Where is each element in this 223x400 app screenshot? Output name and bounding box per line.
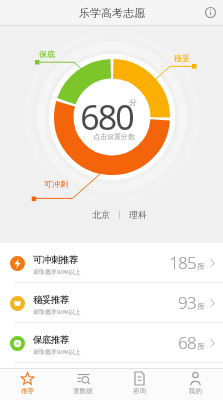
staticText: 分 — [129, 97, 137, 107]
staticText: 北京 — [92, 209, 110, 220]
staticText: 稳妥 — [174, 53, 190, 63]
staticText: 保底推荐 — [33, 334, 69, 345]
staticText: 录取概率90%以上 — [33, 268, 81, 276]
staticText: 185 — [169, 251, 196, 274]
staticText: 所 — [197, 342, 205, 351]
button[interactable] — [198, 0, 223, 25]
button[interactable]: 咨询 — [111, 369, 167, 400]
staticText: 查数据 — [73, 387, 93, 395]
staticText: 推荐 — [21, 387, 34, 395]
staticText: 点击设置分数 — [93, 132, 135, 141]
staticText: 稳妥推荐 — [33, 294, 69, 305]
staticText: 保底 — [39, 49, 55, 59]
button[interactable]: 可冲刺推荐 — [0, 243, 223, 282]
button[interactable]: 北京 — [92, 209, 147, 220]
button[interactable]: 推荐 — [0, 369, 55, 400]
staticText: 所 — [197, 262, 205, 271]
staticText: 乐学高考志愿 — [79, 6, 145, 20]
staticText: 所 — [197, 302, 205, 311]
button[interactable]: 查数据 — [55, 369, 111, 400]
button[interactable]: 稳妥推荐 — [0, 283, 223, 322]
staticText: 理科 — [129, 209, 147, 220]
staticText: 可冲刺 — [44, 179, 68, 189]
staticText: 录取概率90%以上 — [33, 308, 81, 316]
staticText: 我的 — [189, 387, 202, 395]
button[interactable]: 保底推荐 — [0, 323, 223, 362]
button[interactable]: 我的 — [167, 369, 223, 400]
staticText: 可冲刺推荐 — [33, 254, 78, 265]
staticText: 68 — [178, 331, 196, 354]
staticText: 680 — [80, 94, 133, 134]
staticText: 93 — [178, 291, 196, 314]
staticText: 咨询 — [133, 387, 146, 395]
button[interactable] — [74, 79, 150, 155]
staticText: 录取概率90%以上 — [33, 348, 81, 356]
